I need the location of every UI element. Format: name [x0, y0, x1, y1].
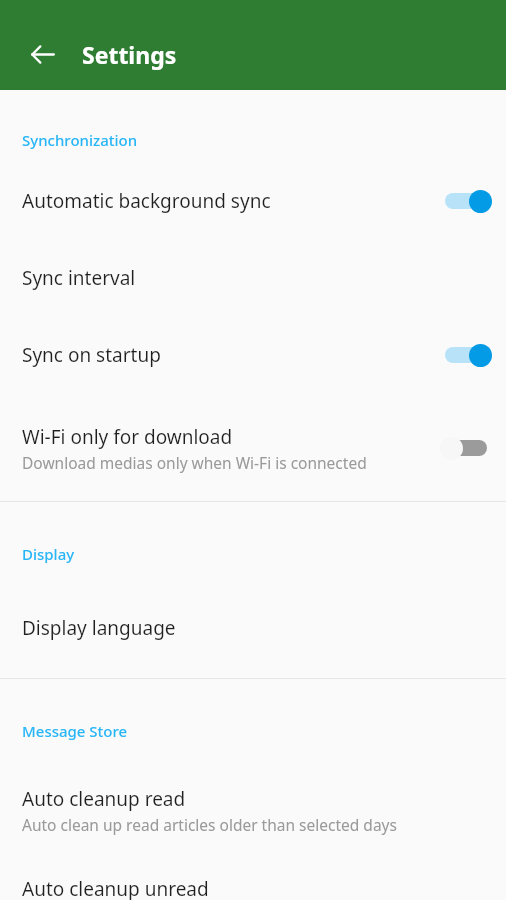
- staticText: Wi-Fi only for download: [22, 424, 233, 450]
- staticText: Sync interval: [22, 265, 136, 291]
- button[interactable]: Sync interval: [0, 257, 506, 299]
- staticText: Download medias only when Wi-Fi is conne…: [22, 452, 367, 473]
- button[interactable]: Wi-Fi only for download: [0, 412, 506, 484]
- staticText: Auto cleanup read: [22, 786, 186, 812]
- staticText: Sync on startup: [22, 342, 161, 368]
- staticText: Display: [22, 544, 75, 564]
- button[interactable]: Back: [16, 28, 68, 80]
- staticText: Auto clean up read articles older than s…: [22, 814, 397, 835]
- button[interactable]: Sync on startup: [0, 334, 506, 376]
- staticText: Settings: [82, 39, 177, 70]
- staticText: Display language: [22, 615, 176, 641]
- button[interactable]: Auto cleanup unread: [0, 876, 506, 900]
- staticText: Automatic background sync: [22, 188, 271, 214]
- button[interactable]: Auto cleanup read: [0, 784, 506, 836]
- button[interactable]: Automatic background sync: [0, 180, 506, 222]
- staticText: Auto cleanup unread: [22, 876, 209, 900]
- staticText: Message Store: [22, 721, 128, 741]
- staticText: Synchronization: [22, 130, 138, 150]
- button[interactable]: Display language: [0, 607, 506, 649]
